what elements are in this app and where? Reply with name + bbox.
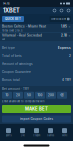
staticText: Amount of winnings [2, 62, 33, 66]
staticText: More [62, 134, 67, 137]
staticText: 10 [5, 93, 8, 97]
staticText: Sports [5, 134, 11, 137]
staticText: × [68, 25, 70, 28]
staticText: Boston Celtics - Miami Heat [2, 25, 46, 28]
button[interactable]: MAKE BET [2, 105, 71, 113]
button[interactable]: Boston Celtics - Miami Heat [0, 24, 73, 33]
staticText: 50 [27, 93, 31, 97]
staticText: 4 TRY [62, 78, 71, 82]
staticText: MAKE BET [25, 106, 48, 112]
staticText: Total Over 219.5 [2, 29, 23, 32]
staticText: 1.85 [61, 25, 67, 28]
button[interactable]: Villarreal - Real Sociedad [0, 33, 73, 42]
button[interactable]: Coupon [29, 124, 43, 141]
button[interactable]: Notifications [56, 9, 63, 12]
button[interactable]: Menu [63, 9, 70, 12]
staticText: W1 [2, 38, 5, 41]
staticText: 100 [37, 93, 42, 97]
staticText: Bet type [2, 46, 15, 50]
staticText: Villarreal - Real Sociedad [2, 34, 42, 37]
staticText: 2 [69, 54, 71, 58]
staticText: Total of bets [2, 54, 22, 58]
button[interactable]: ⌫ [57, 92, 67, 99]
button[interactable]: 1xBet home [3, 7, 20, 14]
staticText: × [68, 34, 70, 37]
staticText: 1XBET [3, 7, 20, 14]
button[interactable]: 10 [2, 92, 12, 99]
staticText: Bet amount · TRY [2, 87, 29, 91]
staticText: 2.10 [61, 34, 67, 37]
staticText: Import Coupon Codes [19, 117, 53, 121]
button[interactable]: Sports [1, 124, 15, 141]
button[interactable]: More [57, 124, 71, 141]
button[interactable]: One click bet [49, 16, 71, 22]
staticText: One click bet [51, 17, 66, 21]
button[interactable]: QUICK BET [2, 16, 24, 22]
button[interactable]: Live [15, 124, 29, 141]
staticText: Express [58, 46, 71, 50]
button[interactable]: Games [43, 124, 57, 141]
staticText: Live [20, 134, 24, 137]
staticText: 20 [16, 93, 20, 97]
button[interactable]: 50 [24, 92, 34, 99]
staticText: ⌫ [60, 93, 64, 97]
button[interactable]: 20 [13, 92, 23, 99]
staticText: QUICK BET [5, 17, 21, 21]
button[interactable]: Search [53, 9, 56, 12]
button[interactable]: 200 [46, 92, 56, 99]
staticText: Coupon Guarantee [2, 70, 31, 74]
button[interactable]: 100 [35, 92, 45, 99]
staticText: Bonus total [2, 78, 20, 82]
staticText: Coupon [33, 134, 40, 137]
staticText: Games [47, 134, 54, 137]
staticText: Enter an amount to compute the win [2, 100, 44, 103]
staticText: 14:15 [3, 2, 10, 5]
button[interactable]: Import Coupon Codes [2, 115, 71, 122]
staticText: 200 [48, 93, 54, 97]
